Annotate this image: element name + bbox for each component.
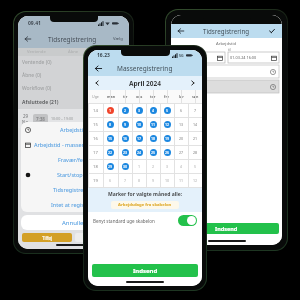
button[interactable]: 22 bbox=[103, 146, 118, 159]
button[interactable]: 7 bbox=[188, 104, 202, 117]
staticText: Benyt standard uge skabelon bbox=[93, 218, 155, 224]
staticText: 13 bbox=[179, 122, 184, 127]
staticText: ons bbox=[136, 94, 143, 99]
button[interactable]: Tilføj bbox=[22, 233, 72, 242]
button[interactable]: 23 bbox=[118, 146, 132, 159]
button[interactable]: 25 bbox=[146, 146, 160, 159]
staticText: 1 bbox=[109, 108, 112, 113]
staticText: 16.23 bbox=[97, 52, 110, 59]
staticText: Masseregistrering bbox=[117, 64, 173, 73]
button[interactable]: 26 bbox=[160, 146, 174, 159]
staticText: fre bbox=[164, 94, 170, 99]
button[interactable]: Åbne (0) bbox=[18, 69, 129, 82]
button[interactable]: 1 bbox=[132, 160, 146, 173]
button[interactable]: 01-03-24 08:00 bbox=[174, 52, 225, 63]
button[interactable]: 4 bbox=[174, 160, 188, 173]
button[interactable]: 11 bbox=[174, 174, 188, 187]
button[interactable]: 10 bbox=[160, 174, 174, 187]
button[interactable]: Annuller bbox=[21, 215, 126, 230]
button[interactable]: 28 bbox=[188, 146, 202, 159]
button[interactable]: Arbejdstid - masseregistrering bbox=[21, 137, 126, 152]
button[interactable]: 9 bbox=[146, 174, 160, 187]
staticText: 6 bbox=[109, 178, 112, 183]
button[interactable]: Ventende (0) bbox=[18, 56, 129, 69]
button[interactable]: Intet at registrere bbox=[21, 197, 126, 212]
button[interactable] bbox=[174, 80, 279, 93]
button[interactable]: Arbejdsdage fra skabelon bbox=[111, 201, 179, 209]
staticText: 15 bbox=[93, 122, 98, 128]
button[interactable]: 5 bbox=[160, 104, 174, 117]
button[interactable]: Arbejdstid bbox=[21, 122, 126, 137]
button[interactable]: 21 bbox=[188, 132, 202, 145]
staticText: 12 bbox=[165, 122, 170, 127]
button[interactable]: 2 bbox=[118, 104, 132, 117]
button[interactable]: Workflow bbox=[92, 48, 129, 56]
button[interactable]: Previous month bbox=[93, 79, 101, 87]
button[interactable]: 18 bbox=[146, 132, 160, 145]
button[interactable]: Confirm bbox=[268, 27, 276, 35]
button[interactable]: Back bbox=[94, 64, 103, 73]
staticText: Arbejdstid - masseregistrering bbox=[34, 141, 113, 148]
button[interactable]: 20 bbox=[174, 132, 188, 145]
button[interactable]: 5 bbox=[188, 160, 202, 173]
staticText: Annuller bbox=[62, 219, 86, 227]
staticText: 10 bbox=[165, 178, 170, 183]
button[interactable]: 12 bbox=[188, 174, 202, 187]
button[interactable]: 4 bbox=[146, 104, 160, 117]
staticText: 4 bbox=[180, 164, 183, 169]
button[interactable]: Next month bbox=[189, 79, 197, 87]
button[interactable]: Back bbox=[177, 27, 185, 35]
button[interactable]: 7 bbox=[118, 174, 132, 187]
staticText: Workflow (0) bbox=[22, 85, 52, 92]
button[interactable]: 01-03-24 16:00 bbox=[228, 52, 279, 63]
button[interactable]: 12 bbox=[160, 118, 174, 131]
staticText: 9 bbox=[124, 122, 127, 127]
button[interactable]: 3 bbox=[132, 104, 146, 117]
button[interactable]: 14 bbox=[188, 118, 202, 131]
staticText: 12 bbox=[193, 178, 198, 183]
button[interactable]: Fravær/ferie bbox=[21, 152, 126, 167]
staticText: tir bbox=[123, 94, 128, 99]
button[interactable]: Benyt standard uge skabelon bbox=[88, 212, 202, 229]
button[interactable]: 10 bbox=[132, 118, 146, 131]
button[interactable]: Info bbox=[75, 233, 125, 242]
button[interactable]: 8 bbox=[132, 174, 146, 187]
button[interactable]: 30 bbox=[118, 160, 132, 173]
staticText: Ventende bbox=[27, 49, 46, 55]
button[interactable]: Vælg bbox=[113, 36, 123, 42]
button[interactable]: Workflow (0) bbox=[18, 82, 129, 95]
button[interactable]: 8 bbox=[103, 118, 118, 131]
button[interactable]: 19 bbox=[160, 132, 174, 145]
button[interactable]: Ventende bbox=[18, 48, 55, 56]
button[interactable]: 11 bbox=[146, 118, 160, 131]
button[interactable]: 29 bbox=[18, 109, 129, 128]
staticText: Fravær/ferie bbox=[58, 156, 90, 163]
button[interactable]: Tidsregistrering bbox=[21, 182, 126, 197]
button[interactable]: 17 bbox=[132, 132, 146, 145]
button[interactable]: 29 bbox=[103, 160, 118, 173]
button[interactable] bbox=[174, 65, 279, 78]
button[interactable]: 1 bbox=[103, 104, 118, 117]
staticText: Indsend bbox=[215, 225, 238, 232]
staticText: 29 bbox=[23, 113, 29, 119]
staticText: 17 bbox=[137, 136, 142, 141]
button[interactable]: 24 bbox=[132, 146, 146, 159]
button[interactable]: 2 bbox=[146, 160, 160, 173]
button[interactable]: 15 bbox=[103, 132, 118, 145]
staticText: Afsluttede (21) bbox=[22, 99, 59, 106]
button[interactable]: Back bbox=[24, 35, 32, 43]
button[interactable]: Indsend bbox=[174, 223, 279, 234]
staticText: 2 bbox=[152, 164, 155, 169]
button[interactable]: 9 bbox=[118, 118, 132, 131]
button[interactable]: 3 bbox=[160, 160, 174, 173]
button[interactable]: 13 bbox=[174, 118, 188, 131]
staticText: 8 bbox=[109, 122, 112, 127]
button[interactable]: 27 bbox=[174, 146, 188, 159]
button[interactable]: 16 bbox=[118, 132, 132, 145]
staticText: 5 bbox=[166, 108, 169, 113]
button[interactable]: 6 bbox=[103, 174, 118, 187]
button[interactable]: Indsend bbox=[92, 264, 198, 277]
button[interactable]: Åbne bbox=[55, 48, 92, 56]
button[interactable]: 6 bbox=[174, 104, 188, 117]
button[interactable]: Start/stop ur bbox=[21, 167, 126, 182]
